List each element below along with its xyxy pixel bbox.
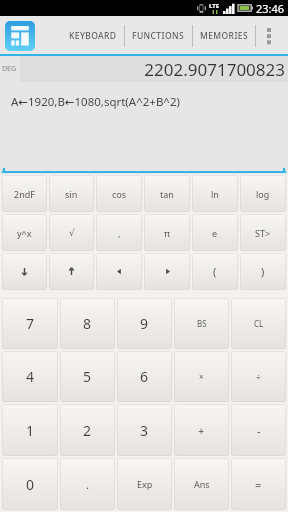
- button[interactable]: Ans: [174, 458, 229, 510]
- staticText: 9: [140, 314, 149, 333]
- button[interactable]: (: [192, 253, 238, 290]
- button[interactable]: CL: [231, 298, 286, 349]
- staticText: ,: [118, 227, 121, 239]
- button[interactable]: 3: [117, 404, 172, 456]
- button[interactable]: BS: [174, 298, 229, 349]
- button[interactable]: 9: [117, 298, 172, 349]
- staticText: 23:46: [256, 1, 285, 16]
- button[interactable]: 5: [60, 351, 115, 402]
- staticText: 3: [140, 421, 149, 440]
- button[interactable]: 2: [60, 404, 115, 456]
- staticText: ×: [199, 371, 204, 382]
- staticText: 5: [83, 367, 92, 386]
- button[interactable]: -: [231, 404, 286, 456]
- button[interactable]: e: [192, 214, 238, 251]
- staticText: BS: [197, 318, 207, 329]
- staticText: 6: [140, 367, 149, 386]
- button[interactable]: ln: [192, 175, 238, 212]
- staticText: CL: [254, 318, 264, 329]
- staticText: log: [256, 188, 270, 200]
- staticText: ln: [211, 188, 219, 200]
- button[interactable]: ): [240, 253, 286, 290]
- staticText: e: [212, 227, 218, 239]
- button[interactable]: 2ndF: [2, 175, 47, 212]
- staticText: -: [257, 423, 261, 438]
- button[interactable]: π: [144, 214, 190, 251]
- staticText: 0: [26, 475, 35, 494]
- staticText: A←1920,B←1080,sqrt(A^2+B^2): [11, 94, 180, 110]
- button[interactable]: Down: [2, 253, 47, 290]
- staticText: ): [261, 264, 265, 279]
- staticText: ÷: [256, 371, 261, 382]
- button[interactable]: log: [240, 175, 286, 212]
- button[interactable]: Up: [49, 253, 94, 290]
- button[interactable]: 4: [2, 351, 58, 402]
- button[interactable]: Exp: [117, 458, 172, 510]
- staticText: cos: [112, 188, 127, 200]
- button[interactable]: ,: [96, 214, 142, 251]
- button[interactable]: sin: [49, 175, 94, 212]
- staticText: MEMORIES: [200, 30, 248, 42]
- staticText: 8: [83, 314, 92, 333]
- staticText: FUNCTIONS: [132, 30, 185, 42]
- staticText: √: [69, 228, 75, 238]
- button[interactable]: Right: [144, 253, 190, 290]
- staticText: 4: [26, 367, 35, 386]
- staticText: 7: [26, 314, 35, 333]
- button[interactable]: tan: [144, 175, 190, 212]
- button[interactable]: 6: [117, 351, 172, 402]
- button[interactable]: √: [49, 214, 94, 251]
- button[interactable]: App icon: [5, 21, 35, 51]
- button[interactable]: ÷: [231, 351, 286, 402]
- staticText: ST>: [255, 227, 271, 239]
- staticText: .: [86, 477, 89, 492]
- button[interactable]: +: [174, 404, 229, 456]
- button[interactable]: ST>: [240, 214, 286, 251]
- button[interactable]: MEMORIES: [193, 16, 255, 56]
- button[interactable]: ×: [174, 351, 229, 402]
- button[interactable]: KEYBOARD: [62, 16, 124, 56]
- staticText: π: [164, 227, 170, 239]
- staticText: Exp: [137, 478, 153, 490]
- staticText: (: [213, 264, 217, 279]
- staticText: KEYBOARD: [69, 30, 117, 42]
- staticText: 1: [26, 421, 35, 440]
- button[interactable]: 8: [60, 298, 115, 349]
- button[interactable]: y^x: [2, 214, 47, 251]
- staticText: y^x: [17, 227, 32, 239]
- staticText: DEG: [2, 64, 17, 74]
- staticText: 2202.9071700823: [144, 58, 285, 81]
- button[interactable]: FUNCTIONS: [125, 16, 192, 56]
- button[interactable]: cos: [96, 175, 142, 212]
- button[interactable]: .: [60, 458, 115, 510]
- button[interactable]: 0: [2, 458, 58, 510]
- staticText: 2: [83, 421, 92, 440]
- staticText: Ans: [194, 478, 210, 490]
- button[interactable]: 7: [2, 298, 58, 349]
- staticText: LTE: [209, 2, 220, 10]
- button[interactable]: More options: [256, 16, 282, 56]
- button[interactable]: 1: [2, 404, 58, 456]
- staticText: tan: [160, 188, 174, 200]
- button[interactable]: Left: [96, 253, 142, 290]
- button[interactable]: =: [231, 458, 286, 510]
- staticText: 2ndF: [14, 188, 35, 200]
- staticText: sin: [65, 188, 78, 200]
- staticText: +: [198, 423, 205, 438]
- staticText: =: [255, 477, 262, 492]
